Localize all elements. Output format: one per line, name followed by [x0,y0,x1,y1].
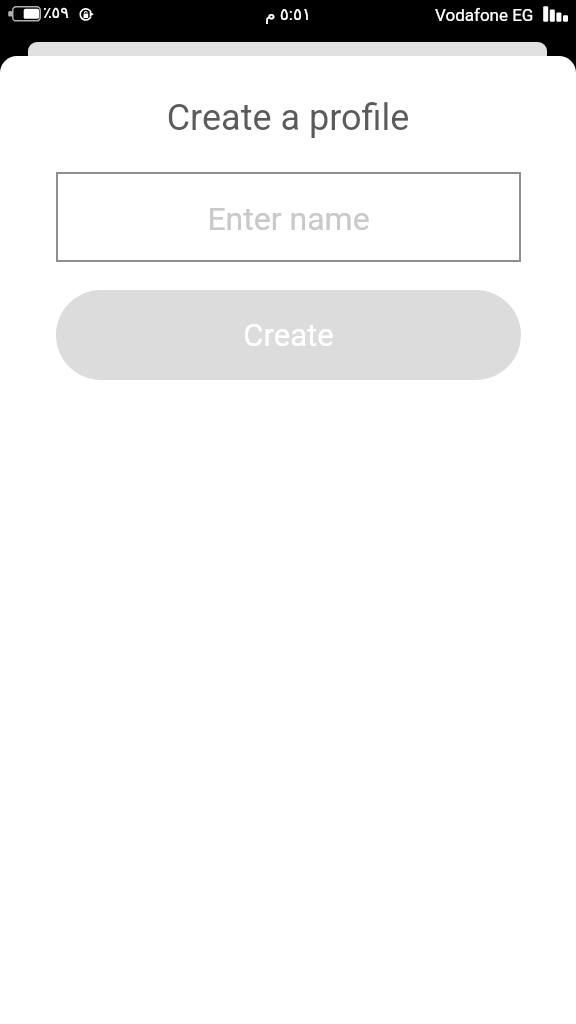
staticText: Vodafone EG [435,5,534,25]
button[interactable]: Create [56,290,521,380]
other: Battery 59 percent [0,0,42,28]
staticText: Create a profile [0,97,576,139]
other: Rotation locked [76,0,98,28]
other: Signal strength [542,0,576,28]
staticText: Create [243,317,334,353]
staticText: ٪٥٩ [43,3,69,22]
staticText: Enter name [207,200,370,238]
button[interactable]: Enter name [56,172,521,262]
staticText: ٥:٥١ م [265,4,312,24]
